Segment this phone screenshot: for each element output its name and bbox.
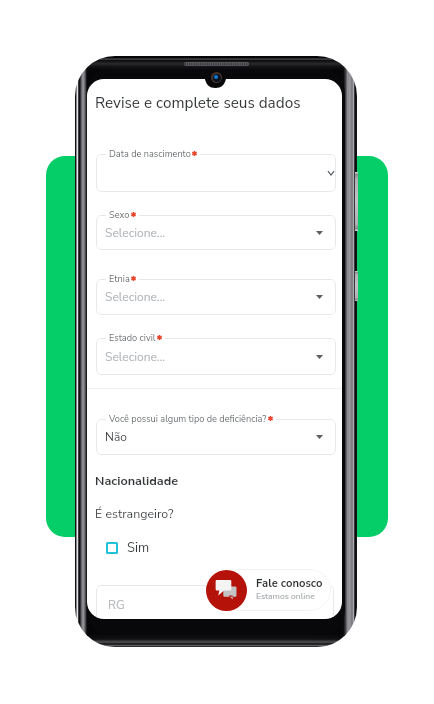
- staticText: Revise e complete seus dados: [95, 93, 301, 114]
- staticText: É estrangeiro?: [95, 505, 174, 522]
- staticText: Estamos online: [256, 590, 315, 602]
- staticText: Sim: [127, 539, 150, 557]
- staticText: Selecione...: [105, 225, 166, 241]
- button[interactable]: Não: [96, 419, 336, 455]
- button[interactable]: Selecione...: [96, 338, 336, 375]
- staticText: Sexo: [109, 209, 130, 222]
- staticText: Você possui algum tipo de deficiência?: [109, 413, 267, 426]
- button[interactable]: Sim: [106, 539, 150, 557]
- staticText: Estado civil: [109, 332, 156, 345]
- button[interactable]: Fale conosco: [216, 569, 331, 611]
- button[interactable]: [96, 154, 336, 192]
- staticText: Selecione...: [105, 349, 166, 365]
- button[interactable]: RG: [96, 585, 334, 619]
- button[interactable]: Selecione...: [96, 215, 336, 250]
- staticText: Selecione...: [105, 289, 166, 305]
- staticText: Fale conosco: [256, 576, 323, 591]
- staticText: Não: [105, 429, 127, 445]
- staticText: RG: [108, 597, 125, 613]
- staticText: Data de nascimento: [109, 148, 191, 161]
- staticText: Nacionalidade: [95, 472, 179, 489]
- button[interactable]: Selecione...: [96, 279, 336, 315]
- staticText: Etnia: [109, 273, 130, 286]
- button[interactable]: Fale conosco: [206, 570, 247, 611]
